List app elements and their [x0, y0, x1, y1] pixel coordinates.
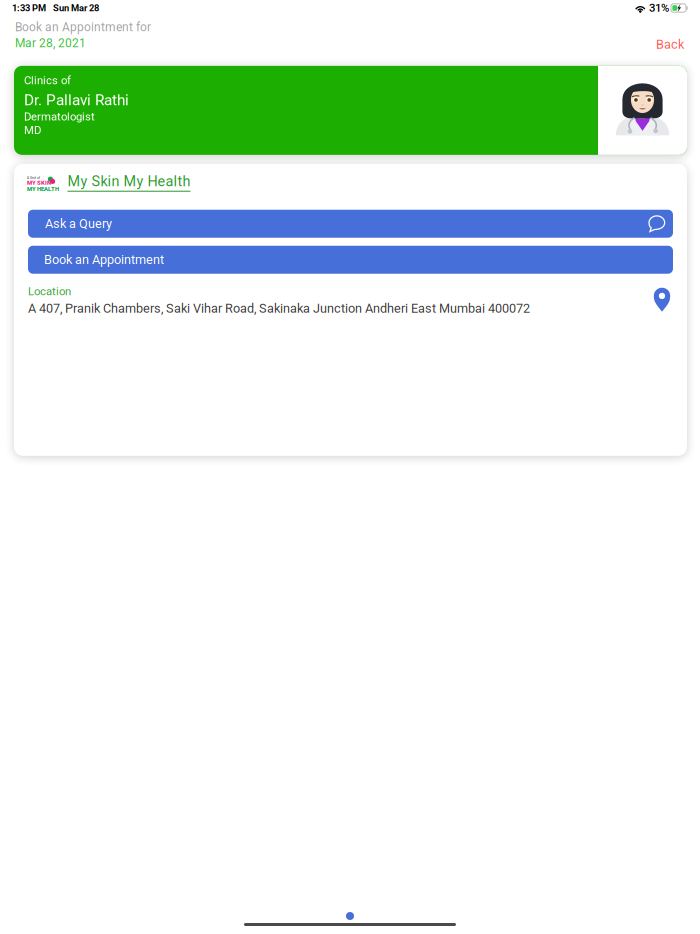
staticText: Sun Mar 28 — [53, 2, 99, 13]
staticText: A Unit of — [27, 176, 40, 180]
staticText: 31% — [649, 1, 669, 15]
staticText: Dermatologist — [24, 110, 95, 123]
staticText: Ask a Query — [45, 216, 112, 231]
staticText: MY HEALTH — [27, 186, 59, 192]
button[interactable]: Book an Appointment — [28, 246, 673, 274]
staticText: MY SKIN — [27, 179, 51, 186]
staticText: Clinics of — [24, 74, 71, 87]
staticText: A 407, Pranik Chambers, Saki Vihar Road,… — [28, 301, 530, 316]
staticText: MD — [24, 123, 41, 137]
staticText: My Skin My Health — [67, 173, 190, 190]
staticText: Location — [28, 285, 71, 298]
button[interactable]: My Skin My Health — [55, 173, 190, 192]
staticText: Back — [656, 37, 684, 52]
staticText: Book an Appointment for — [15, 20, 151, 34]
button[interactable]: Back — [656, 20, 685, 52]
staticText: 1:33 PM — [12, 2, 46, 13]
staticText: Mar 28, 2021 — [15, 36, 86, 50]
staticText: Book an Appointment — [44, 252, 164, 267]
staticText: Dr. Pallavi Rathi — [24, 91, 129, 109]
button[interactable]: Open location in Maps — [653, 285, 671, 312]
button[interactable]: Ask a Query — [28, 210, 673, 238]
